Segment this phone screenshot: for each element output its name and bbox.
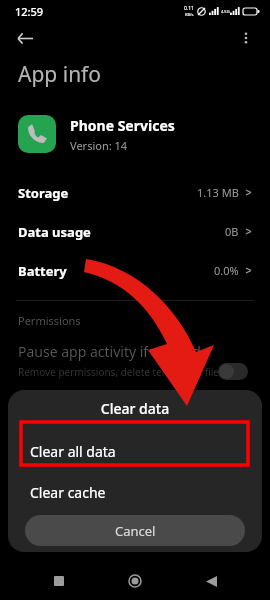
button[interactable]: More options <box>232 24 260 52</box>
button[interactable]: Data usage <box>0 212 270 251</box>
staticText: Phone Services <box>70 116 175 135</box>
button[interactable]: Clear cache <box>8 473 262 511</box>
staticText: Storage <box>18 184 69 202</box>
staticText: Battery <box>18 262 67 280</box>
staticText: KB/s <box>185 12 194 17</box>
staticText: 1.13 MB <box>197 185 239 200</box>
staticText: App info <box>18 60 102 89</box>
staticText: 0.0% <box>214 263 239 278</box>
button[interactable]: Recents <box>42 564 76 598</box>
button[interactable]: Battery <box>0 251 270 290</box>
staticText: Pause app activity if unused <box>18 342 201 361</box>
staticText: Permissions <box>18 313 81 328</box>
button[interactable]: Cancel <box>25 515 245 546</box>
staticText: Cancel <box>115 522 156 540</box>
button[interactable]: Back <box>194 564 228 598</box>
staticText: Version: 14 <box>70 138 128 153</box>
staticText: 0.11 <box>184 5 194 12</box>
staticText: 12:59 <box>15 4 44 19</box>
button[interactable]: Home <box>118 564 152 598</box>
staticText: Clear data <box>8 399 262 418</box>
staticText: Remove permissions, delete temporary fil… <box>18 365 224 379</box>
staticText: Data usage <box>18 223 91 241</box>
staticText: 0B <box>225 224 239 239</box>
button[interactable]: Back <box>10 23 40 53</box>
staticText: Clear all data <box>30 442 116 461</box>
staticText: 4.5G <box>221 9 230 14</box>
button[interactable]: Clear all data <box>8 430 262 473</box>
button[interactable]: Storage <box>0 173 270 212</box>
staticText: Clear cache <box>30 483 106 502</box>
